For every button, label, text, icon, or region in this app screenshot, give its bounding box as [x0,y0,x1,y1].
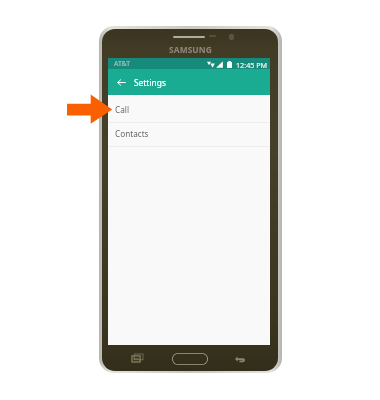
button[interactable]: Call [108,97,270,123]
staticText: AT&T [114,59,131,68]
button[interactable]: Back [232,351,249,366]
button[interactable]: Home [172,353,208,365]
button[interactable]: Navigate up [114,75,128,89]
staticText: SAMSUNG [169,44,212,55]
staticText: 12:45 PM [236,60,268,70]
button[interactable]: Recent apps [130,351,144,365]
staticText: Call [115,104,129,115]
staticText: Contacts [115,128,149,139]
button[interactable]: Contacts [108,123,270,146]
staticText: Settings [134,77,166,88]
